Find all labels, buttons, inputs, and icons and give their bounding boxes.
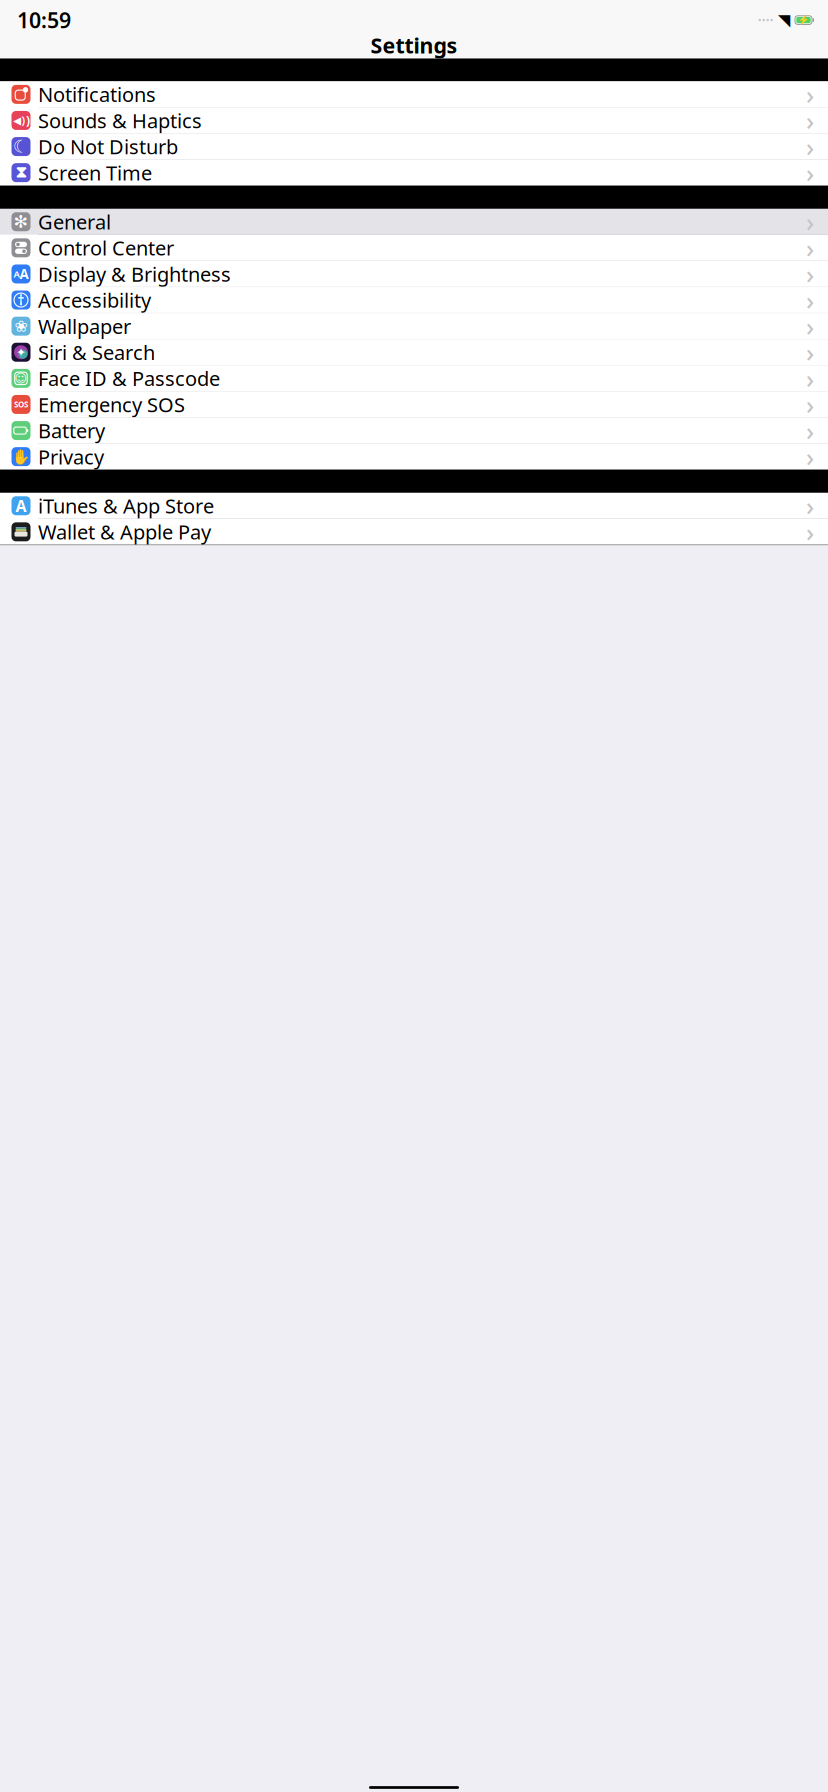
button[interactable]: Wallet & Apple Pay [0, 519, 828, 545]
button[interactable]: † [0, 287, 828, 313]
staticText: › [806, 156, 814, 189]
staticText: ✻ [13, 212, 28, 232]
button[interactable]: ✻ [0, 209, 828, 235]
button[interactable]: A [0, 493, 828, 519]
staticText: › [806, 309, 814, 343]
staticText: ) [21, 113, 25, 128]
staticText: › [806, 515, 814, 549]
staticText: ☺ [14, 371, 27, 385]
staticText: › [806, 489, 814, 522]
staticText: Sounds & Haptics [38, 107, 202, 134]
staticText: ◀ [13, 114, 21, 126]
staticText: A [13, 268, 19, 280]
staticText: Wallet & Apple Pay [38, 519, 211, 545]
button[interactable]: ⧗ [0, 160, 828, 186]
staticText: Accessibility [38, 287, 151, 313]
staticText: › [806, 414, 814, 447]
button[interactable]: SOS [0, 392, 828, 418]
staticText: ⚡ [797, 15, 809, 25]
staticText: ◥ [778, 11, 790, 29]
staticText: General [38, 208, 111, 235]
staticText: ⧗ [15, 165, 26, 180]
staticText: › [806, 257, 814, 291]
staticText: Notifications [38, 81, 156, 108]
staticText: SOS [14, 399, 28, 410]
button[interactable]: ✦ [0, 339, 828, 365]
staticText: › [806, 335, 814, 369]
button[interactable]: ☾ [0, 134, 828, 160]
button[interactable]: ❀ [0, 313, 828, 339]
button[interactable]: A [0, 261, 828, 287]
staticText: › [806, 130, 814, 163]
button[interactable]: Notifications [0, 81, 828, 108]
staticText: › [806, 440, 814, 473]
staticText: ) [26, 112, 30, 128]
staticText: Screen Time [38, 159, 152, 186]
staticText: › [806, 388, 814, 421]
button[interactable]: Battery [0, 418, 828, 444]
staticText: A [19, 265, 28, 283]
button[interactable]: ☺ [0, 365, 828, 392]
staticText: › [806, 205, 814, 238]
staticText: › [806, 77, 814, 111]
button[interactable]: ✋ [0, 444, 828, 470]
staticText: ✋ [12, 448, 30, 465]
staticText: Privacy [38, 443, 104, 470]
staticText: Emergency SOS [38, 391, 185, 418]
staticText: ☾ [13, 137, 29, 156]
staticText: Display & Brightness [38, 261, 231, 287]
staticText: ❀ [14, 317, 27, 335]
staticText: Siri & Search [38, 339, 155, 366]
staticText: Do Not Disturb [38, 133, 178, 160]
staticText: Face ID & Passcode [38, 365, 220, 392]
staticText: › [806, 361, 814, 395]
button[interactable]: Control Center [0, 235, 828, 261]
staticText: † [17, 291, 24, 309]
staticText: iTunes & App Store [38, 492, 214, 519]
staticText: › [806, 283, 814, 317]
staticText: Wallpaper [38, 313, 131, 339]
staticText: › [806, 104, 814, 137]
staticText: Battery [38, 417, 105, 444]
staticText: Settings [370, 31, 457, 59]
button[interactable]: ◀ [0, 108, 828, 134]
staticText: Control Center [38, 235, 174, 261]
staticText: ✦ [16, 345, 26, 359]
staticText: A [15, 495, 26, 516]
staticText: 10:59 [17, 6, 71, 34]
staticText: › [806, 231, 814, 265]
